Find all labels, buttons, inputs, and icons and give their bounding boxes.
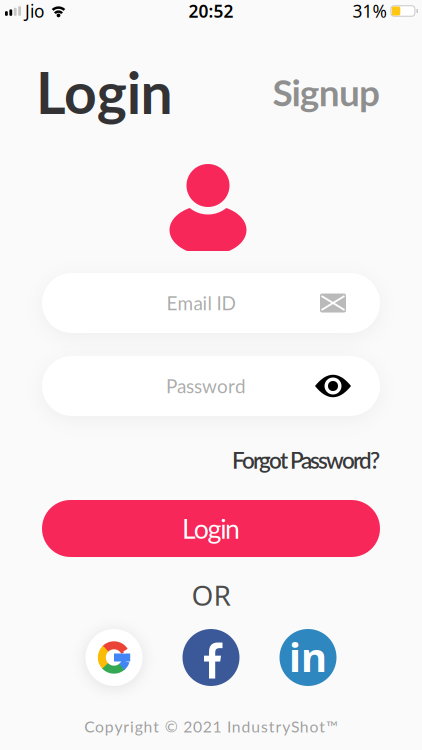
button[interactable]: Email ID [42, 273, 380, 333]
button[interactable]: Sign in with Google [85, 629, 142, 686]
staticText: Password [166, 375, 246, 397]
staticText: Copyright © 2021 IndustryShot™ [84, 717, 338, 736]
staticText: in [289, 630, 327, 683]
button[interactable]: Sign in with Facebook [182, 629, 239, 686]
button[interactable]: Forgot Password? [232, 447, 380, 473]
staticText: Login [36, 58, 173, 126]
staticText: Login [182, 512, 240, 544]
button[interactable]: Login [36, 58, 173, 126]
staticText: Signup [272, 70, 380, 114]
button[interactable]: Login [42, 500, 380, 557]
button[interactable]: Sign in with LinkedIn [279, 629, 336, 686]
button[interactable]: Signup [272, 70, 380, 114]
staticText: OR [191, 576, 230, 614]
button[interactable]: Password [42, 356, 380, 416]
staticText: 20:52 [188, 0, 233, 22]
staticText: Jio [25, 0, 44, 22]
staticText: 31% [352, 0, 386, 22]
staticText: Forgot Password? [232, 447, 380, 473]
staticText: Email ID [166, 292, 235, 314]
